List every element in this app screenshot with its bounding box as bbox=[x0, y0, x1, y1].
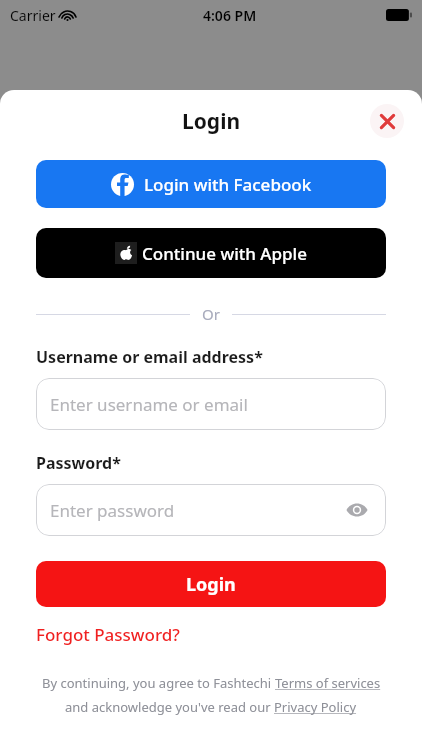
button[interactable]: Show password bbox=[342, 495, 372, 525]
button[interactable]: Continue with Apple bbox=[36, 228, 386, 278]
button[interactable]: Close bbox=[370, 104, 404, 138]
button[interactable]: Terms of services bbox=[275, 674, 381, 692]
staticText: Enter username or email bbox=[50, 393, 248, 416]
staticText: Login bbox=[186, 572, 236, 597]
staticText: Enter password bbox=[50, 499, 175, 522]
button[interactable]: Login bbox=[36, 561, 386, 607]
staticText: Forgot Password? bbox=[36, 623, 180, 646]
staticText: Terms of services bbox=[275, 674, 381, 692]
staticText: Or bbox=[202, 304, 220, 324]
button[interactable]: Login with Facebook bbox=[36, 160, 386, 208]
staticText: Password* bbox=[36, 452, 121, 474]
button[interactable]: Privacy Policy bbox=[274, 698, 357, 716]
button[interactable]: Forgot Password? bbox=[36, 621, 180, 648]
staticText: Username or email address* bbox=[36, 346, 263, 368]
staticText: Privacy Policy bbox=[274, 698, 357, 716]
staticText: Login with Facebook bbox=[144, 173, 312, 196]
staticText: Login bbox=[182, 107, 241, 136]
button[interactable]: Enter password bbox=[36, 484, 386, 536]
staticText: Continue with Apple bbox=[142, 242, 307, 265]
button[interactable]: Enter username or email bbox=[36, 378, 386, 430]
staticText: and acknowledge you've read our bbox=[65, 698, 274, 716]
staticText: By continuing, you agree to Fashtechi bbox=[42, 674, 275, 692]
staticText: 4:06 PM bbox=[203, 6, 257, 25]
staticText: Carrier bbox=[10, 6, 56, 25]
